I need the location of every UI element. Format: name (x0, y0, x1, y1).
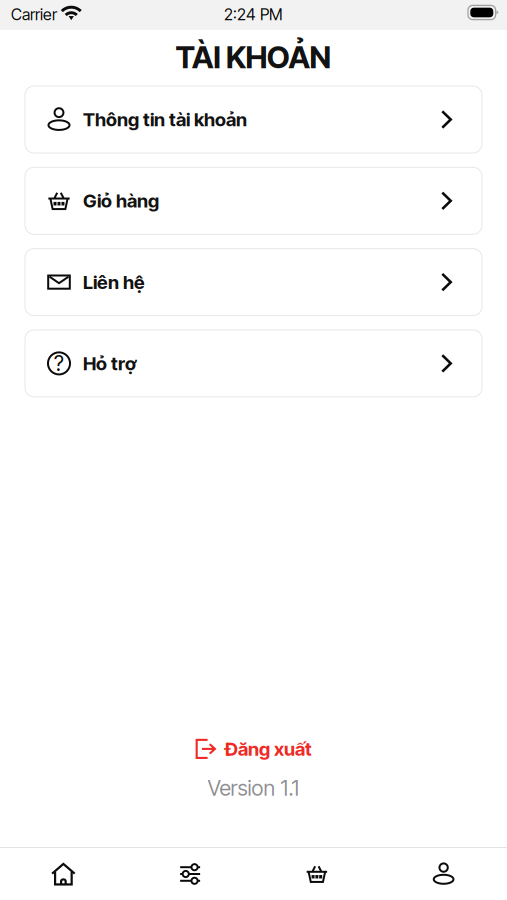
staticText: Hỏ trợ (83, 352, 136, 375)
staticText: Carrier (11, 5, 57, 24)
staticText: ? (54, 351, 64, 376)
button[interactable]: Trang chủ (0, 848, 127, 900)
staticText: TÀI KHOẢN (175, 38, 332, 75)
staticText: Thông tin tài khoản (83, 108, 247, 131)
staticText: Giỏ hàng (83, 189, 159, 212)
button[interactable]: Thông tin tài khoản (25, 86, 482, 153)
button[interactable]: Tài khoản (380, 848, 507, 900)
button[interactable]: Đăng xuất (187, 735, 320, 763)
button[interactable]: Bộ lọc (127, 848, 254, 900)
button[interactable]: Giỏ hàng (25, 167, 482, 234)
staticText: Version 1.1 (207, 775, 299, 801)
button[interactable]: ? (25, 330, 482, 397)
staticText: Đăng xuất (225, 738, 312, 760)
button[interactable]: Liên hệ (25, 249, 482, 316)
staticText: Liên hệ (83, 271, 145, 293)
staticText: 2:24 PM (224, 5, 283, 24)
button[interactable]: Giỏ hàng (253, 848, 380, 900)
